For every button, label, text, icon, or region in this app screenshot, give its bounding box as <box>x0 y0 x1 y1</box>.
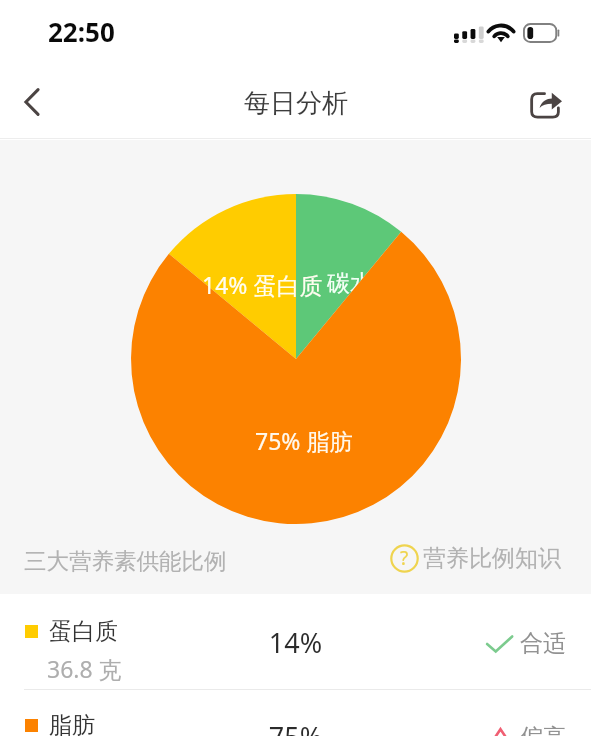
staticText: 75% 脂肪 <box>255 425 353 456</box>
staticText: 碳水 <box>327 269 373 298</box>
staticText: ? <box>400 545 409 571</box>
staticText: 蛋白质 <box>49 617 118 646</box>
staticText: 22:50 <box>48 14 115 49</box>
button[interactable]: 脂肪 <box>0 690 591 736</box>
button[interactable]: Share <box>515 73 577 135</box>
staticText: 三大营养素供能比例 <box>24 547 227 575</box>
button[interactable]: Back <box>1 71 63 133</box>
staticText: 偏高 <box>520 723 566 736</box>
staticText: 合适 <box>520 629 566 658</box>
staticText: 脂肪 <box>49 711 95 736</box>
staticText: 75% <box>0 718 591 736</box>
staticText: 营养比例知识 <box>423 544 561 573</box>
staticText: 14% <box>0 624 591 661</box>
staticText: 14% 蛋白质 <box>202 269 323 300</box>
button[interactable]: ? <box>390 544 561 573</box>
staticText: 36.8 克 <box>47 653 122 684</box>
button[interactable]: 蛋白质 <box>0 596 591 689</box>
staticText: 每日分析 <box>244 87 348 120</box>
